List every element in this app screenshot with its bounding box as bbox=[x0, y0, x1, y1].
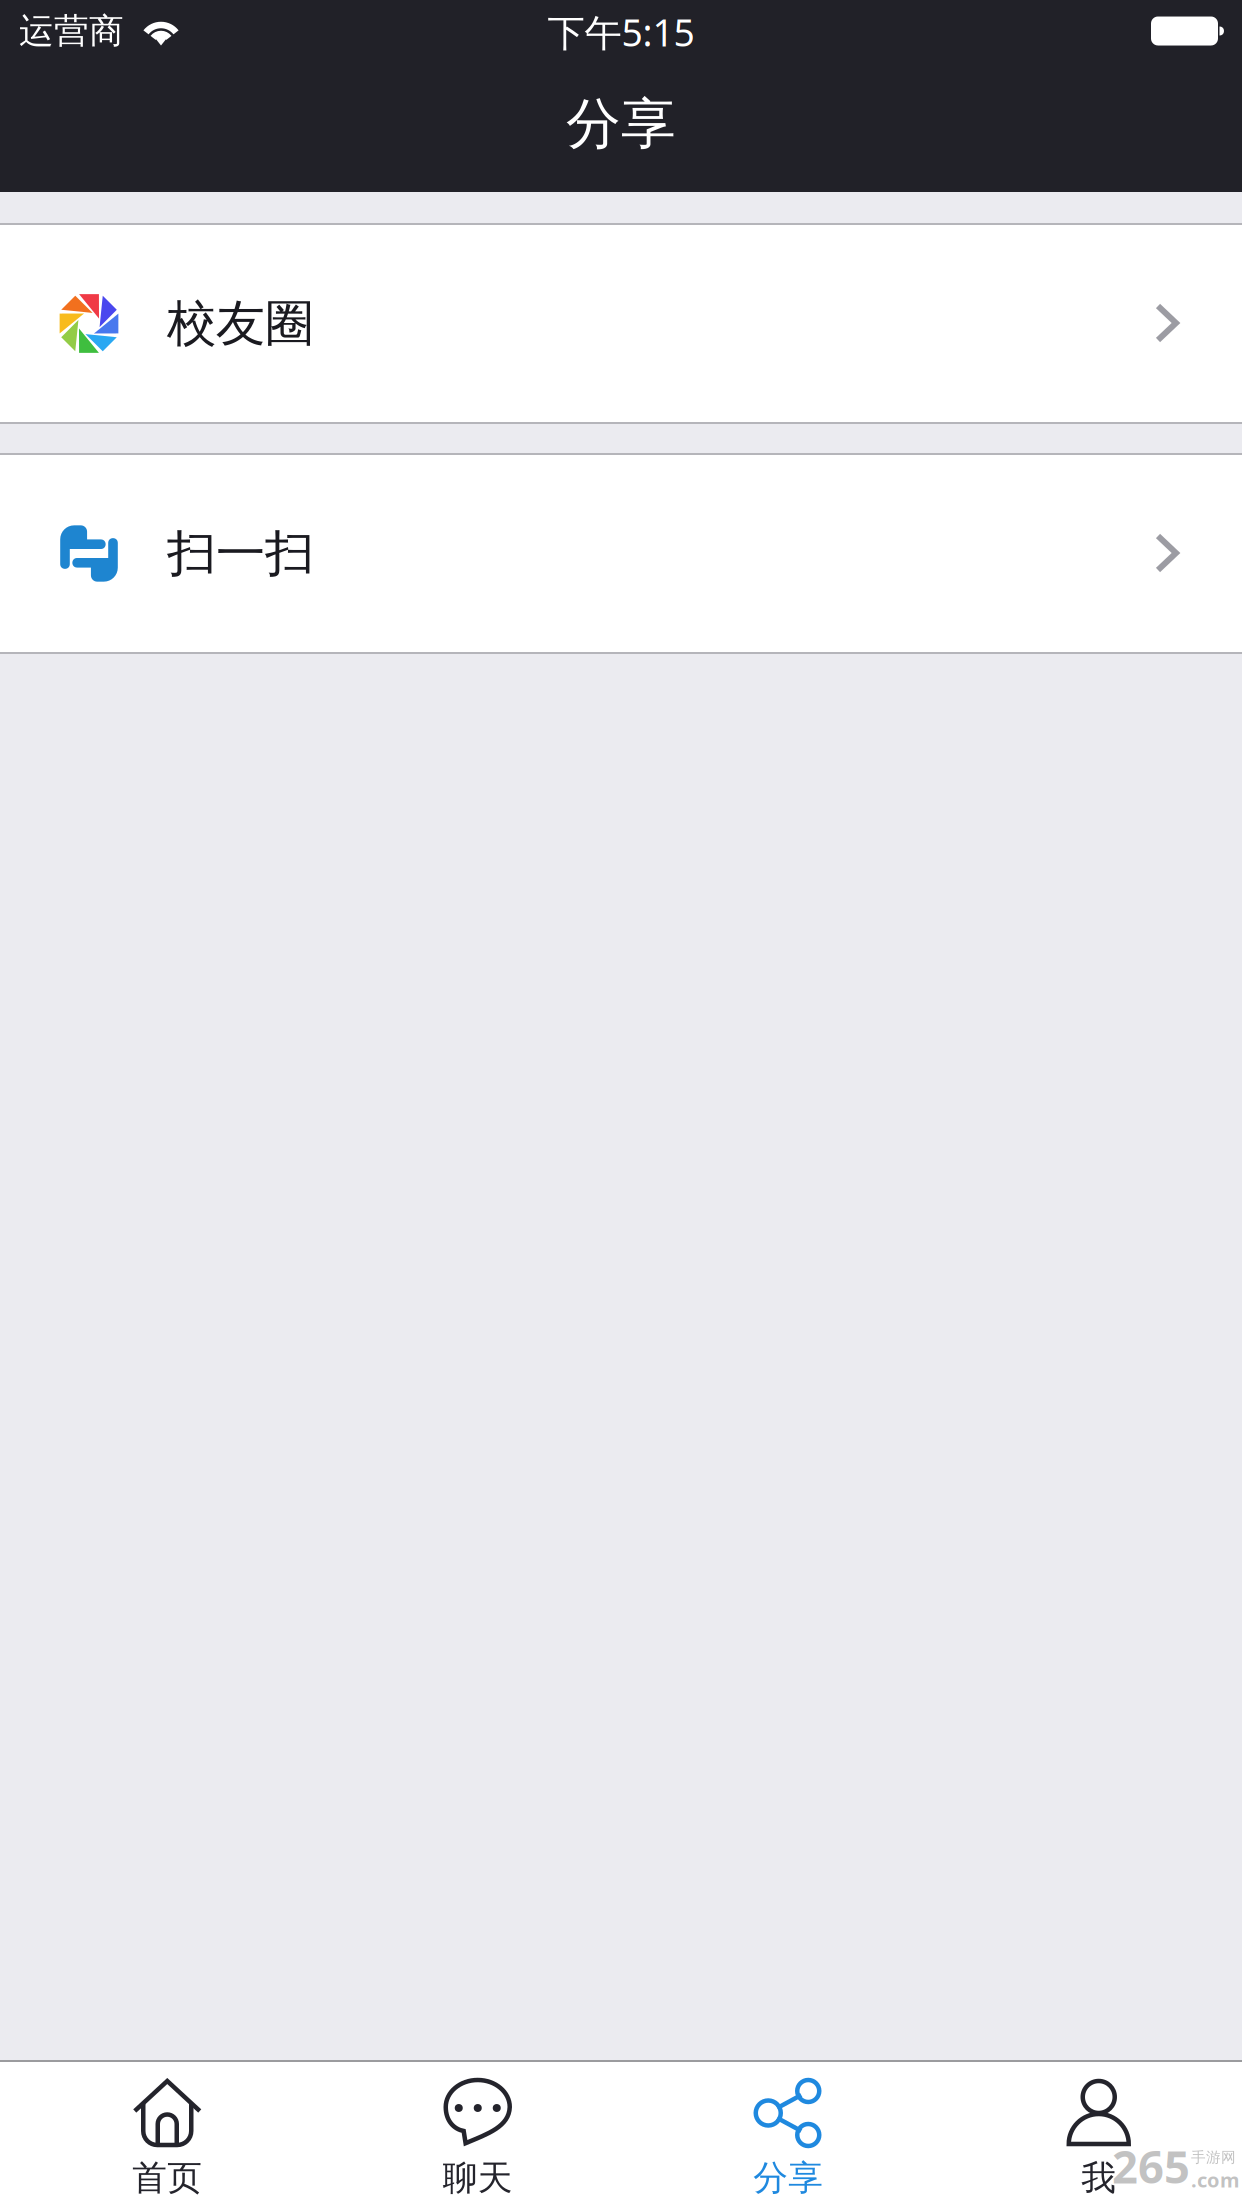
staticText: 校友圈 bbox=[167, 293, 314, 354]
button[interactable]: 聊天 bbox=[322, 2062, 633, 2208]
button[interactable]: 扫一扫 bbox=[0, 455, 1242, 652]
button[interactable]: 校友圈 bbox=[0, 225, 1242, 422]
staticText: .com bbox=[1191, 2166, 1240, 2193]
staticText: 分享 bbox=[753, 2157, 823, 2199]
staticText: 首页 bbox=[132, 2157, 202, 2199]
button[interactable]: 分享 bbox=[633, 2062, 943, 2208]
staticText: 分享 bbox=[566, 90, 676, 157]
staticText: 聊天 bbox=[443, 2157, 513, 2199]
staticText: 手游网 bbox=[1191, 2148, 1236, 2166]
staticText: 下午5:15 bbox=[547, 7, 694, 57]
staticText: 265 bbox=[1112, 2136, 1190, 2196]
staticText: 扫一扫 bbox=[167, 523, 314, 584]
staticText: 我 bbox=[1081, 2157, 1116, 2199]
button[interactable]: 首页 bbox=[12, 2062, 322, 2208]
staticText: 运营商 bbox=[19, 10, 124, 52]
button[interactable]: 我 bbox=[943, 2062, 1242, 2208]
